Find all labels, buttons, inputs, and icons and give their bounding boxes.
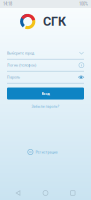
button[interactable]: Recents xyxy=(64,186,82,200)
staticText: Пароль xyxy=(7,75,20,80)
button[interactable]: Забыли пароль? xyxy=(7,102,84,110)
button[interactable]: Регистрация xyxy=(28,147,57,157)
button[interactable]: Back xyxy=(9,186,27,200)
staticText: 100% xyxy=(79,1,88,7)
staticText: 14:18 xyxy=(3,1,12,7)
staticText: Регистрация xyxy=(35,150,57,154)
button[interactable]: Вход xyxy=(7,87,84,99)
button[interactable]: Home xyxy=(36,186,54,200)
staticText: Выберите город xyxy=(7,51,34,56)
staticText: Логин (телефон) xyxy=(7,63,36,68)
staticText: СГК xyxy=(43,14,66,29)
staticText: Забыли пароль? xyxy=(31,104,59,109)
staticText: Вход xyxy=(41,91,49,96)
